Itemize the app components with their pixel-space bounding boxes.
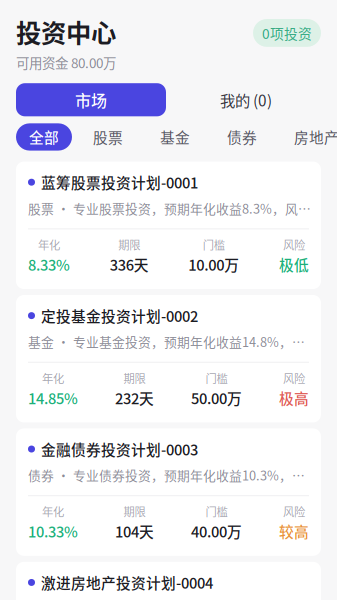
staticText: 极低 bbox=[279, 254, 309, 275]
staticText: 债券 bbox=[227, 126, 257, 147]
staticText: 232天 bbox=[115, 387, 154, 408]
staticText: 336天 bbox=[110, 254, 149, 275]
staticText: 蓝筹股票投资计划-0001 bbox=[41, 172, 198, 193]
staticText: 全部 bbox=[29, 126, 59, 147]
staticText: 定投基金投资计划-0002 bbox=[41, 305, 198, 326]
staticText: 债券 · 专业债券投资，预期年化收益10.3%，… bbox=[28, 466, 305, 484]
staticText: 股票 · 专业股票投资，预期年化收益8.3%，风… bbox=[28, 199, 311, 217]
button[interactable]: 房地产 bbox=[278, 123, 337, 150]
staticText: 房地产 bbox=[294, 126, 337, 147]
staticText: 期限 bbox=[118, 236, 140, 253]
staticText: 年化 bbox=[42, 370, 64, 386]
button[interactable]: 我的 (0) bbox=[171, 84, 321, 116]
staticText: 投资中心 bbox=[16, 13, 116, 50]
button[interactable]: 债券 bbox=[211, 123, 273, 150]
staticText: 8.33% bbox=[28, 254, 70, 275]
button[interactable]: 金融债券投资计划-0003 bbox=[16, 428, 321, 556]
staticText: 期限 bbox=[123, 370, 145, 386]
button[interactable]: 定投基金投资计划-0002 bbox=[16, 295, 321, 422]
staticText: 市场 bbox=[75, 88, 107, 111]
staticText: 较高 bbox=[279, 521, 309, 542]
staticText: 风险 bbox=[283, 503, 305, 520]
button[interactable]: 蓝筹股票投资计划-0001 bbox=[16, 162, 321, 289]
staticText: 激进房地产投资计划-0004 bbox=[41, 572, 213, 593]
staticText: 我的 (0) bbox=[220, 89, 272, 111]
staticText: 14.85% bbox=[28, 387, 78, 408]
staticText: 基金 bbox=[160, 126, 190, 147]
staticText: 可用资金 80.00万 bbox=[16, 53, 116, 72]
staticText: 股票 bbox=[93, 126, 123, 147]
staticText: 基金 · 专业基金投资，预期年化收益14.8%，… bbox=[28, 332, 305, 351]
staticText: 年化 bbox=[42, 503, 64, 520]
button[interactable]: 市场 bbox=[16, 83, 166, 116]
staticText: 风险 bbox=[283, 236, 305, 253]
staticText: 期限 bbox=[123, 503, 145, 520]
button[interactable]: 基金 bbox=[144, 123, 206, 150]
staticText: 风险 bbox=[283, 370, 305, 386]
staticText: 金融债券投资计划-0003 bbox=[41, 438, 198, 460]
staticText: 门槛 bbox=[205, 503, 227, 520]
staticText: 极高 bbox=[279, 387, 309, 408]
staticText: 104天 bbox=[115, 521, 154, 542]
button[interactable]: 全部 bbox=[16, 123, 72, 150]
button[interactable]: 股票 bbox=[77, 123, 139, 150]
staticText: 10.33% bbox=[28, 521, 78, 542]
staticText: 门槛 bbox=[205, 370, 227, 386]
staticText: 年化 bbox=[38, 236, 60, 253]
button[interactable]: 激进房地产投资计划-0004 bbox=[16, 562, 321, 600]
staticText: 门槛 bbox=[203, 236, 225, 253]
staticText: 10.00万 bbox=[188, 254, 239, 275]
staticText: 50.00万 bbox=[191, 387, 242, 408]
staticText: 40.00万 bbox=[191, 521, 242, 542]
staticText: 0项投资 bbox=[262, 23, 312, 43]
